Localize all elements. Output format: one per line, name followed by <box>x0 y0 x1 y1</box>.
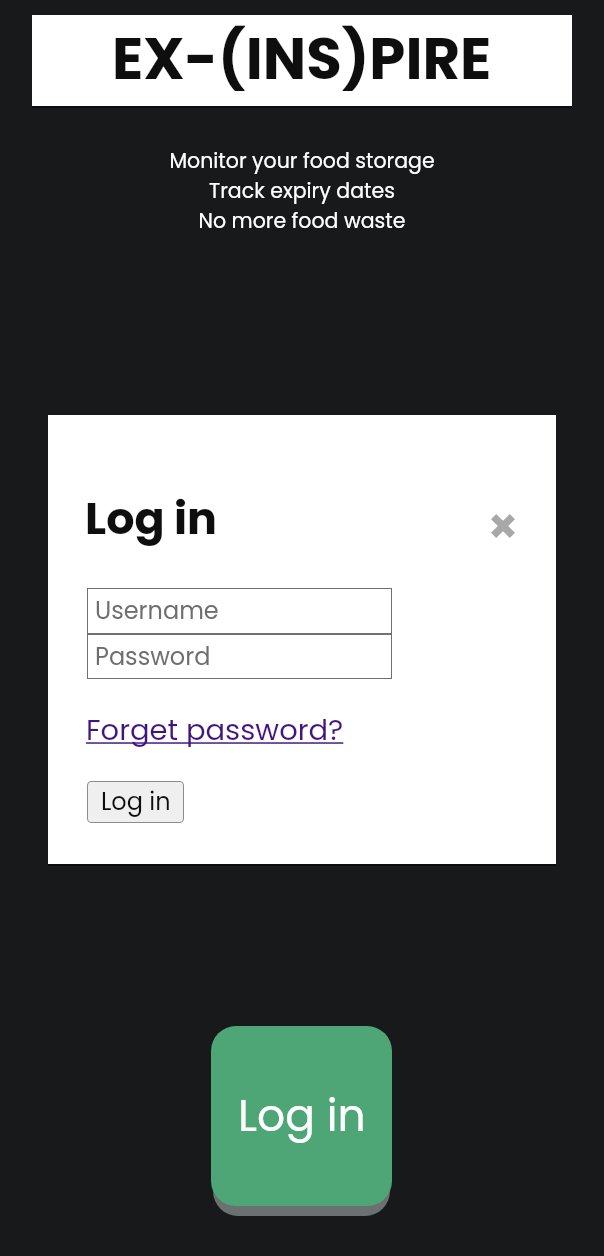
button[interactable]: Password <box>87 634 392 679</box>
button[interactable]: Log in <box>211 1026 392 1206</box>
button[interactable]: Log in <box>87 781 184 823</box>
button[interactable]: Username <box>87 588 392 634</box>
staticText: Log in <box>101 785 171 819</box>
button[interactable]: Forget password? <box>86 710 344 751</box>
button[interactable]: Close <box>484 507 522 545</box>
staticText: Log in <box>85 487 218 549</box>
staticText: Password <box>95 640 211 674</box>
staticText: EX-(INS)PIRE <box>112 18 492 99</box>
staticText: Log in <box>238 1085 366 1147</box>
staticText: Monitor your food storage Track expiry d… <box>169 146 435 235</box>
staticText: Username <box>95 594 219 628</box>
staticText: Forget password? <box>86 710 344 751</box>
